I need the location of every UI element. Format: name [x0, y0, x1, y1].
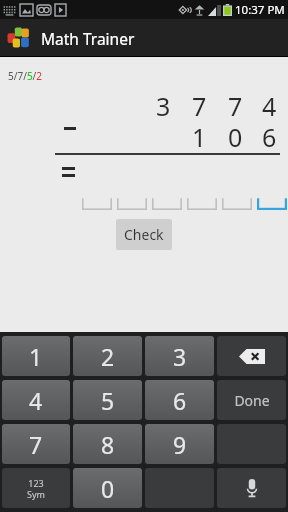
button[interactable] [257, 192, 287, 210]
staticText: 0 [228, 120, 243, 154]
staticText: 3 [173, 341, 187, 372]
button[interactable]: 9 [145, 424, 214, 464]
button[interactable]: 3 [145, 336, 214, 376]
button[interactable] [187, 192, 217, 210]
staticText: 3 [156, 89, 171, 123]
button[interactable]: Backspace [217, 336, 286, 376]
button[interactable] [152, 192, 182, 210]
button[interactable]: 6 [145, 380, 214, 420]
button[interactable]: Check [116, 219, 172, 250]
staticText: 0 [101, 473, 115, 504]
staticText: 4 [262, 89, 277, 123]
staticText: 7 [29, 429, 43, 460]
staticText: Done [234, 391, 270, 410]
button[interactable]: 8 [73, 424, 142, 464]
staticText: 6 [262, 120, 277, 154]
button[interactable]: 123 Sym [2, 468, 70, 508]
staticText: 8 [101, 429, 115, 460]
button[interactable]: Voice input [217, 468, 286, 508]
staticText: Check [124, 225, 164, 244]
staticText: 2 [101, 341, 115, 372]
staticText: 7 [228, 89, 243, 123]
staticText: 123 Sym [27, 477, 45, 500]
button[interactable]: 2 [73, 336, 142, 376]
button[interactable] [222, 192, 252, 210]
staticText: 1 [192, 120, 207, 154]
button[interactable]: 4 [2, 380, 70, 420]
staticText: 9 [173, 429, 187, 460]
staticText: 5/7/5/2 [8, 69, 43, 83]
button[interactable]: Done [217, 380, 286, 420]
button[interactable]: 0 [73, 468, 142, 508]
staticText: 5 [101, 385, 115, 416]
staticText: 7 [192, 89, 207, 123]
staticText: 6 [173, 385, 187, 416]
staticText: Math Trainer [41, 28, 135, 49]
button[interactable] [82, 192, 112, 210]
button[interactable] [117, 192, 147, 210]
staticText: 4 [29, 385, 43, 416]
button[interactable]: 7 [2, 424, 70, 464]
button[interactable]: 5 [73, 380, 142, 420]
button[interactable]: 1 [2, 336, 70, 376]
staticText: 10:37 PM [235, 2, 285, 18]
staticText: 1 [29, 341, 43, 372]
